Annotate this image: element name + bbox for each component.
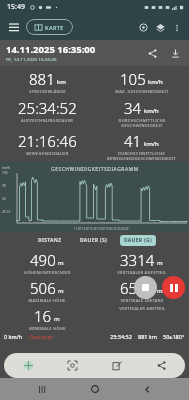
staticText: km/h: [148, 78, 163, 86]
button[interactable]: DAUER (G): [120, 235, 156, 246]
staticText: m: [157, 287, 163, 295]
staticText: GESCHWINDIGKEITSDIAGRAMM: [51, 166, 139, 173]
staticText: 21:16:46: [18, 131, 77, 151]
staticText: 78: [2, 184, 6, 188]
staticText: FR, 14.11.2025 16:35:00: [6, 57, 57, 63]
button[interactable]: Back: [137, 379, 157, 399]
staticText: 26.13: [2, 210, 11, 214]
staticText: km: [57, 78, 66, 86]
button[interactable]: Share: [143, 44, 161, 62]
staticText: KARTE: [45, 24, 64, 31]
staticText: 490: [30, 250, 56, 270]
staticText: 105: [120, 69, 146, 89]
staticText: 16: [34, 306, 52, 326]
staticText: km/h: [144, 140, 159, 148]
staticText: 50±180°: [163, 333, 185, 340]
staticText: DISTANZ: [38, 237, 62, 244]
staticText: 14.11.2025 16:35:00: [6, 43, 96, 56]
staticText: VERTIKALER ABSTIEG: [119, 306, 165, 311]
staticText: m: [54, 315, 60, 323]
staticText: DURCHSCHNITTLICHE GESCHWINDIGKEIT: [118, 118, 166, 128]
staticText: DAUER (S): [80, 237, 108, 244]
staticText: 25:34:52: [110, 333, 132, 340]
button[interactable]: Tags: [52, 353, 92, 378]
staticText: 25:34:52: [18, 98, 77, 118]
staticText: Gestoppt: [29, 333, 53, 340]
button[interactable]: Funktion: [141, 353, 181, 378]
staticText: 506: [30, 278, 56, 298]
staticText: 34: [124, 98, 142, 118]
staticText: 41: [124, 131, 142, 151]
staticText: m: [157, 259, 163, 267]
button[interactable]: My location: [135, 19, 152, 36]
staticText: VERTIKALE DISTANZ: [120, 298, 164, 303]
staticText: 0 km/h: [4, 333, 23, 340]
staticText: AUFZEICHNUNGSDAUER: [21, 118, 73, 123]
staticText: 15:49: [7, 2, 25, 12]
staticText: MINIMALE HÖHE: [29, 326, 66, 331]
staticText: HÖHENUNTERSCHIED: [24, 270, 71, 275]
staticText: 11:00 13:00 15:00 17:00 19:00 21:00 23:0…: [74, 227, 129, 231]
staticText: km/h: [144, 107, 159, 115]
staticText: DURCHSCHNITTLICHE BEWEGUNGSGESCHWINDIGKE…: [107, 151, 176, 161]
button[interactable]: Home: [85, 379, 105, 399]
staticText: 105: [2, 171, 8, 175]
staticText: km/h: [2, 166, 10, 170]
button[interactable]: DAUER (S): [76, 235, 112, 246]
staticText: 3314: [120, 250, 155, 270]
button[interactable]: Kategorie: [8, 353, 48, 378]
button[interactable]: Map layers: [152, 19, 169, 36]
button[interactable]: Download: [166, 44, 184, 62]
staticText: 52: [2, 197, 6, 201]
button[interactable]: DISTANZ: [34, 235, 66, 246]
staticText: VERTIKALER AUFSTIEG: [117, 270, 166, 275]
button[interactable]: Menu: [5, 18, 23, 36]
staticText: 6593: [120, 278, 155, 298]
staticText: MAX. GESCHWINDIGKEIT: [115, 89, 169, 94]
staticText: m: [58, 287, 64, 295]
button[interactable]: Bearbeiten: [97, 353, 137, 378]
staticText: STRECKENLÄNGE: [29, 89, 66, 94]
staticText: 881 km: [138, 333, 157, 340]
button[interactable]: More options: [169, 20, 184, 35]
button[interactable]: Recents: [32, 379, 52, 399]
staticText: m: [58, 259, 64, 267]
staticText: 881: [29, 69, 55, 89]
staticText: DAUER (G): [124, 237, 152, 244]
staticText: BEWEGUNGSDAUER: [26, 151, 69, 156]
button[interactable]: Stop recording: [134, 276, 157, 299]
button[interactable]: Pause recording: [162, 276, 185, 299]
button[interactable]: KARTE: [26, 19, 73, 35]
staticText: MAXIMALE HÖHE: [28, 298, 66, 303]
